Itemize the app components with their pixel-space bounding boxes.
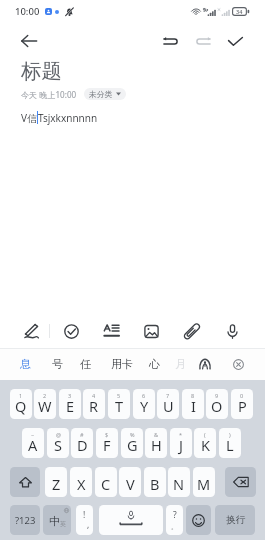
button[interactable]: Backspace bbox=[225, 467, 256, 497]
button[interactable]: Shift bbox=[10, 467, 40, 497]
staticText: @ bbox=[56, 431, 61, 438]
staticText: K bbox=[201, 435, 210, 455]
button[interactable]: 月 bbox=[164, 351, 196, 377]
button[interactable]: 任 bbox=[69, 351, 101, 377]
staticText: Q bbox=[15, 396, 27, 416]
button[interactable]: Draw bbox=[18, 318, 44, 344]
staticText: 4 bbox=[92, 392, 96, 399]
button[interactable]: J bbox=[170, 428, 192, 458]
button[interactable]: 未分类 bbox=[84, 88, 126, 100]
staticText: Y bbox=[140, 396, 149, 416]
staticText: 月 bbox=[175, 357, 186, 371]
button[interactable]: O bbox=[206, 389, 228, 419]
staticText: V信 bbox=[21, 111, 37, 125]
button[interactable]: K bbox=[194, 428, 216, 458]
button[interactable]: Attach bbox=[178, 318, 204, 344]
button[interactable]: T bbox=[108, 389, 130, 419]
staticText: T bbox=[115, 396, 124, 416]
button[interactable]: Y bbox=[133, 389, 155, 419]
button[interactable]: N bbox=[168, 467, 190, 497]
staticText: Tsjxkxnnnnn bbox=[38, 111, 98, 125]
button[interactable]: X bbox=[70, 467, 92, 497]
button[interactable]: Z bbox=[45, 467, 67, 497]
staticText: 3 bbox=[68, 392, 72, 399]
staticText: % bbox=[130, 431, 135, 438]
button[interactable]: A bbox=[22, 428, 44, 458]
button[interactable]: D bbox=[71, 428, 93, 458]
button[interactable]: H bbox=[145, 428, 167, 458]
staticText: ) bbox=[229, 431, 231, 438]
button[interactable]: Input method bbox=[194, 353, 216, 375]
staticText: ( bbox=[204, 431, 206, 438]
staticText: 心 bbox=[149, 357, 160, 371]
staticText: 。 bbox=[171, 523, 178, 531]
button[interactable]: Insert image bbox=[138, 318, 164, 344]
staticText: A bbox=[28, 435, 38, 455]
button[interactable]: 息 bbox=[9, 351, 41, 377]
button[interactable]: L bbox=[219, 428, 241, 458]
staticText: 7 bbox=[166, 392, 170, 399]
staticText: 息 bbox=[20, 357, 31, 371]
button[interactable]: Format bbox=[98, 318, 124, 344]
button[interactable]: Voice bbox=[219, 318, 245, 344]
button[interactable]: Q bbox=[10, 389, 32, 419]
button[interactable]: 号 bbox=[41, 351, 73, 377]
button[interactable]: 心 bbox=[138, 351, 170, 377]
button[interactable]: Back bbox=[14, 26, 44, 56]
button[interactable]: F bbox=[96, 428, 118, 458]
button[interactable]: Space bbox=[99, 505, 163, 535]
staticText: V bbox=[126, 474, 135, 494]
staticText: D bbox=[77, 435, 88, 455]
staticText: 标题 bbox=[21, 58, 62, 84]
staticText: F bbox=[103, 435, 111, 455]
staticText: $ bbox=[105, 431, 109, 438]
button[interactable]: Close bbox=[227, 353, 249, 375]
button[interactable]: Switch language bbox=[43, 505, 71, 535]
staticText: C bbox=[101, 474, 111, 494]
staticText: I bbox=[191, 396, 196, 416]
button[interactable]: ?123 bbox=[10, 505, 40, 535]
button[interactable]: M bbox=[193, 467, 215, 497]
staticText: 9 bbox=[215, 392, 219, 399]
button[interactable]: ? bbox=[166, 505, 183, 535]
button[interactable]: Done bbox=[221, 27, 249, 55]
button[interactable]: C bbox=[95, 467, 117, 497]
button[interactable]: Checklist bbox=[58, 318, 84, 344]
button[interactable]: Undo bbox=[156, 27, 184, 55]
staticText: M bbox=[197, 474, 211, 494]
button[interactable]: E bbox=[59, 389, 81, 419]
button[interactable]: B bbox=[144, 467, 166, 497]
button[interactable]: V bbox=[119, 467, 141, 497]
button[interactable]: ! bbox=[76, 505, 93, 535]
staticText: N bbox=[173, 474, 185, 494]
staticText: G bbox=[127, 435, 138, 455]
staticText: 中 bbox=[49, 514, 60, 528]
staticText: 今天 晚上10:00 bbox=[21, 89, 77, 100]
staticText: 1 bbox=[19, 392, 23, 399]
staticText: Z bbox=[52, 474, 61, 494]
button[interactable]: 换行 bbox=[215, 505, 255, 535]
staticText: & bbox=[154, 431, 159, 438]
staticText: # bbox=[80, 431, 84, 438]
button[interactable]: S bbox=[47, 428, 69, 458]
button[interactable]: W bbox=[34, 389, 56, 419]
staticText: 2 bbox=[43, 392, 47, 399]
staticText: X bbox=[77, 474, 86, 494]
button[interactable]: U bbox=[157, 389, 179, 419]
button[interactable]: P bbox=[231, 389, 253, 419]
button[interactable]: 用卡 bbox=[106, 351, 138, 377]
staticText: J bbox=[179, 435, 183, 455]
button[interactable]: Redo bbox=[189, 27, 217, 55]
staticText: 未分类 bbox=[89, 89, 113, 99]
staticText: , bbox=[87, 519, 90, 531]
staticText: 号 bbox=[52, 357, 63, 371]
button[interactable]: G bbox=[121, 428, 143, 458]
button[interactable]: I bbox=[182, 389, 204, 419]
button[interactable]: Emoji bbox=[186, 505, 211, 535]
staticText: * bbox=[179, 431, 183, 438]
staticText: E bbox=[66, 396, 75, 416]
staticText: W bbox=[38, 396, 52, 416]
button[interactable]: R bbox=[83, 389, 105, 419]
staticText: O bbox=[211, 396, 223, 416]
staticText: ?123 bbox=[15, 514, 36, 527]
